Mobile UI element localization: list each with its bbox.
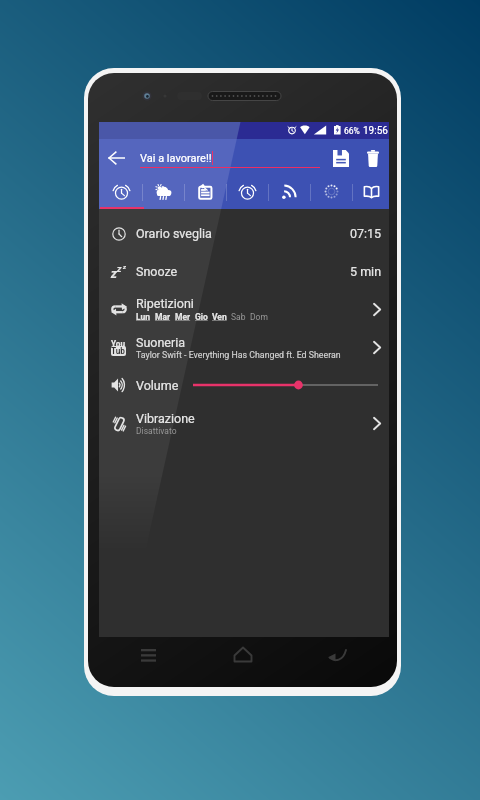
staticText: Suoneria bbox=[136, 335, 186, 350]
staticText: Lun bbox=[136, 312, 151, 322]
button[interactable]: Volume bbox=[99, 366, 389, 404]
staticText: Taylor Swift - Everything Has Changed ft… bbox=[136, 350, 341, 360]
staticText: z bbox=[111, 267, 117, 281]
staticText: You bbox=[111, 339, 126, 349]
button[interactable]: Weather bbox=[142, 176, 184, 209]
staticText: z bbox=[117, 264, 122, 275]
staticText: 66% bbox=[344, 126, 360, 136]
staticText: z bbox=[123, 263, 126, 270]
staticText: Vibrazione bbox=[136, 411, 195, 426]
staticText: Ripetizioni bbox=[136, 296, 194, 311]
staticText: Vai a lavorare!! bbox=[140, 152, 212, 165]
button[interactable]: Ripetizioni bbox=[99, 290, 389, 328]
staticText: 19:56 bbox=[363, 125, 388, 137]
button[interactable]: Loading bbox=[310, 176, 352, 209]
staticText: 07:15 bbox=[350, 226, 382, 241]
staticText: Mar bbox=[155, 312, 171, 322]
button[interactable]: Notes bbox=[184, 176, 226, 209]
staticText: Orario sveglia bbox=[136, 226, 212, 241]
staticText: Tube bbox=[111, 346, 126, 356]
button[interactable]: Timer bbox=[226, 176, 268, 209]
button[interactable]: Vibrazione bbox=[99, 404, 389, 442]
staticText: Sab bbox=[231, 312, 246, 322]
staticText: Mer bbox=[175, 312, 191, 322]
staticText: Snooze bbox=[136, 264, 178, 279]
staticText: Gio bbox=[195, 312, 208, 322]
staticText: Ven bbox=[212, 312, 227, 322]
staticText: Dom bbox=[250, 312, 268, 322]
button[interactable]: Save bbox=[325, 139, 357, 176]
staticText: Volume bbox=[136, 378, 179, 393]
staticText: Disattivato bbox=[136, 426, 177, 436]
button[interactable]: Feed bbox=[268, 176, 310, 209]
button[interactable]: Back bbox=[99, 139, 134, 176]
button[interactable]: You bbox=[99, 328, 389, 366]
button[interactable]: Book bbox=[352, 176, 390, 209]
staticText: 5 min bbox=[350, 264, 382, 279]
button[interactable]: z bbox=[99, 252, 389, 290]
button[interactable]: Delete bbox=[357, 139, 389, 176]
button[interactable]: Orario sveglia bbox=[99, 214, 389, 252]
button[interactable]: Alarm bbox=[100, 176, 142, 209]
